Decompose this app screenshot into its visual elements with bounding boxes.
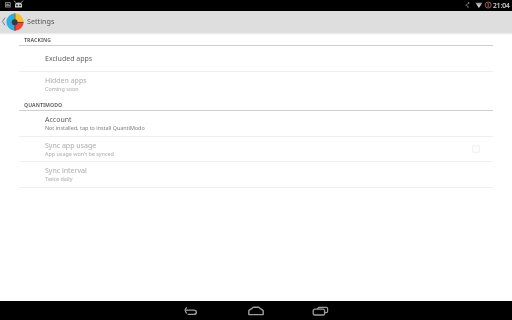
- button[interactable]: Account: [0, 111, 512, 136]
- staticText: App usage won't be synced: [45, 150, 114, 157]
- staticText: Account: [45, 115, 72, 125]
- button[interactable]: Excluded apps: [0, 46, 512, 71]
- staticText: QUANTIMODO: [24, 101, 63, 108]
- button[interactable]: Navigate up, Settings: [0, 11, 512, 32]
- staticText: Sync app usage: [45, 141, 97, 151]
- staticText: Not installed, tap to install QuantiModo: [45, 124, 145, 131]
- staticText: Twice daily: [45, 175, 73, 182]
- button[interactable]: Recent apps: [300, 301, 340, 320]
- staticText: 21:04: [493, 1, 510, 10]
- staticText: TRACKING: [24, 36, 52, 43]
- staticText: Coming soon: [45, 85, 79, 92]
- staticText: Hidden apps: [45, 76, 87, 86]
- staticText: Sync interval: [45, 166, 87, 176]
- button[interactable]: Home: [236, 301, 276, 320]
- button[interactable]: Back: [171, 301, 211, 320]
- staticText: Settings: [27, 16, 55, 26]
- button[interactable]: Hidden apps: [0, 72, 512, 96]
- staticText: Excluded apps: [45, 54, 93, 64]
- button[interactable]: Sync interval: [0, 162, 512, 187]
- button[interactable]: Sync app usage: [0, 137, 512, 161]
